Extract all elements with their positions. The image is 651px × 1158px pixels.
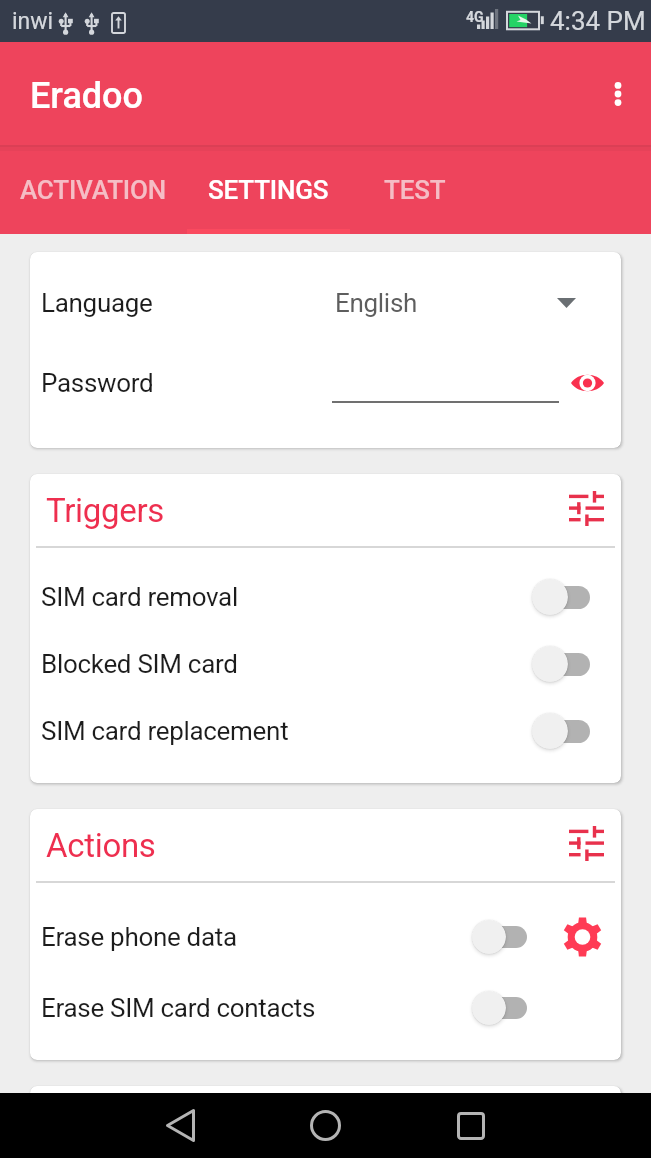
- staticText: TEST: [384, 175, 446, 205]
- button[interactable]: Erase SIM card contacts: [30, 975, 621, 1041]
- staticText: Eradoo: [30, 75, 143, 117]
- button[interactable]: Recents: [439, 1093, 502, 1158]
- staticText: SIM card removal: [41, 582, 238, 612]
- staticText: Language: [41, 288, 153, 318]
- button[interactable]: Language: [30, 264, 621, 342]
- button[interactable]: Configure: [564, 821, 608, 865]
- staticText: Erase SIM card contacts: [41, 993, 316, 1023]
- button[interactable]: ACTIVATION: [0, 145, 188, 234]
- staticText: Password: [41, 368, 154, 398]
- staticText: 4:34 PM: [550, 6, 646, 36]
- staticText: inwi: [12, 8, 54, 35]
- staticText: SIM card replacement: [41, 716, 289, 746]
- button[interactable]: TEST: [350, 145, 479, 234]
- staticText: Triggers: [46, 491, 165, 530]
- staticText: 4G: [466, 9, 484, 25]
- staticText: Blocked SIM card: [41, 649, 238, 679]
- button[interactable]: Erase settings: [559, 914, 605, 960]
- button[interactable]: Show password: [563, 359, 611, 407]
- button[interactable]: Configure: [564, 486, 608, 530]
- button[interactable]: SIM card replacement: [30, 698, 621, 764]
- button[interactable]: More options: [590, 66, 646, 122]
- staticText: ACTIVATION: [20, 175, 166, 205]
- button[interactable]: Home: [294, 1093, 357, 1158]
- staticText: SETTINGS: [208, 175, 329, 205]
- staticText: English: [335, 288, 418, 318]
- staticText: Actions: [46, 826, 156, 865]
- button[interactable]: SETTINGS: [187, 145, 350, 234]
- staticText: Erase phone data: [41, 922, 237, 952]
- button[interactable]: Blocked SIM card: [30, 631, 621, 697]
- button[interactable]: Back: [149, 1093, 212, 1158]
- button[interactable]: Erase phone data: [30, 904, 621, 970]
- button[interactable]: SIM card removal: [30, 564, 621, 630]
